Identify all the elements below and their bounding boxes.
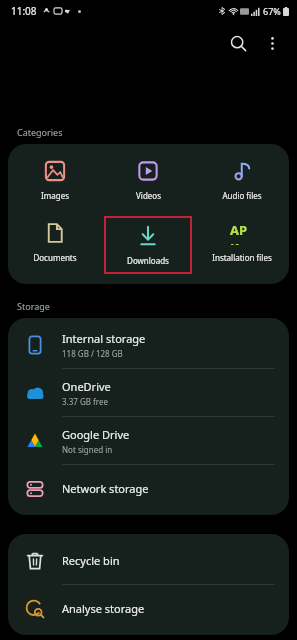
staticText: Videos <box>136 190 161 201</box>
button[interactable]: Videos <box>101 154 195 206</box>
staticText: OneDrive <box>62 379 111 394</box>
staticText: 118 GB / 128 GB <box>62 348 123 359</box>
staticText: Not signed in <box>62 444 113 455</box>
staticText: Storage <box>17 300 50 312</box>
button[interactable]: More options <box>255 26 289 60</box>
button[interactable]: Search <box>221 26 255 60</box>
staticText: Installation files <box>212 252 272 263</box>
staticText: Audio files <box>222 190 262 201</box>
staticText: Recycle bin <box>62 553 120 568</box>
button[interactable]: Google Drive <box>8 417 289 464</box>
button[interactable]: OneDrive <box>8 369 289 416</box>
staticText: Categories <box>17 126 63 138</box>
staticText: 3.37 GB free <box>62 396 108 407</box>
button[interactable]: Internal storage <box>8 321 289 368</box>
button[interactable]: Analyse storage <box>8 585 289 632</box>
button[interactable]: Audio files <box>195 154 289 206</box>
button[interactable]: Documents <box>8 216 101 268</box>
staticText: Network storage <box>62 481 149 496</box>
staticText: 11:08 <box>11 4 37 18</box>
button[interactable]: Images <box>8 154 101 206</box>
staticText: Google Drive <box>62 427 130 442</box>
staticText: 67% <box>263 5 281 17</box>
staticText: APK <box>230 221 254 245</box>
staticText: Analyse storage <box>62 601 145 616</box>
button[interactable]: APK <box>195 216 289 268</box>
button[interactable]: Recycle bin <box>8 537 289 584</box>
button[interactable]: Network storage <box>8 465 289 512</box>
button[interactable]: Downloads <box>106 218 190 272</box>
staticText: Internal storage <box>62 331 146 346</box>
staticText: Documents <box>33 252 77 263</box>
staticText: Images <box>41 190 69 201</box>
staticText: Downloads <box>127 255 169 266</box>
